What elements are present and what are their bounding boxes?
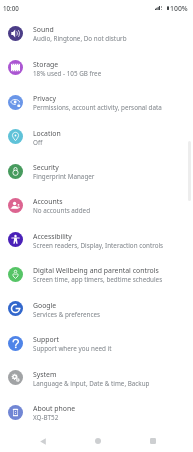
- button[interactable]: Sound: [0, 16, 193, 50]
- staticText: Support where you need it: [33, 344, 112, 353]
- button[interactable]: Support: [0, 326, 193, 360]
- staticText: 10:00: [3, 4, 19, 12]
- staticText: Accounts: [33, 197, 63, 206]
- staticText: Privacy: [33, 94, 56, 103]
- staticText: Google: [33, 301, 57, 310]
- staticText: About phone: [33, 404, 76, 413]
- staticText: Security: [33, 163, 59, 172]
- button[interactable]: Back: [33, 431, 53, 451]
- staticText: Language & input, Date & time, Backup: [33, 379, 150, 388]
- button[interactable]: Privacy: [0, 85, 193, 119]
- staticText: Digital Wellbeing and parental controls: [33, 266, 159, 275]
- staticText: Services & preferences: [33, 310, 101, 319]
- staticText: Sound: [33, 25, 54, 34]
- button[interactable]: Storage: [0, 50, 193, 85]
- staticText: Audio, Ringtone, Do not disturb: [33, 34, 127, 43]
- button[interactable]: Accounts: [0, 188, 193, 222]
- button[interactable]: System: [0, 360, 193, 395]
- staticText: Accessibility: [33, 232, 72, 241]
- staticText: Storage: [33, 60, 59, 69]
- staticText: Fingerprint Manager: [33, 172, 95, 181]
- button[interactable]: Location: [0, 119, 193, 154]
- button[interactable]: Home: [88, 431, 108, 451]
- button[interactable]: Digital Wellbeing and parental controls: [0, 257, 193, 291]
- staticText: Off: [33, 138, 43, 147]
- staticText: 18% used - 105 GB free: [33, 69, 102, 78]
- staticText: System: [33, 370, 57, 379]
- staticText: Support: [33, 335, 60, 344]
- staticText: Screen readers, Display, Interaction con…: [33, 241, 164, 250]
- button[interactable]: Recent apps: [143, 431, 163, 451]
- staticText: 100%: [170, 4, 188, 13]
- staticText: XQ-BT52: [33, 413, 59, 422]
- staticText: Location: [33, 129, 61, 138]
- staticText: Screen time, app timers, bedtime schedul…: [33, 275, 163, 284]
- staticText: No accounts added: [33, 206, 91, 215]
- button[interactable]: Google: [0, 291, 193, 326]
- button[interactable]: Accessibility: [0, 222, 193, 257]
- button[interactable]: About phone: [0, 395, 193, 429]
- staticText: Permissions, account activity, personal …: [33, 103, 162, 112]
- button[interactable]: Security: [0, 154, 193, 188]
